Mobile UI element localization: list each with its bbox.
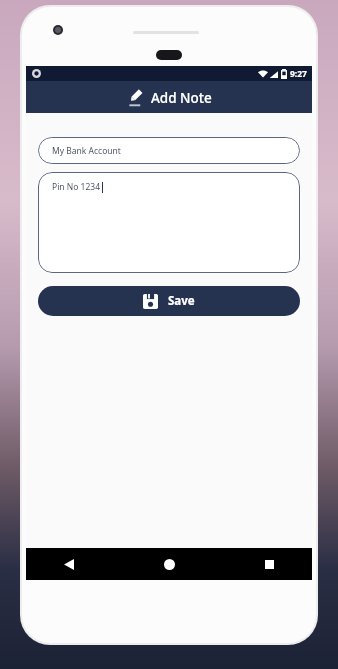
button[interactable]: My Bank Account — [38, 137, 300, 164]
staticText: My Bank Account — [52, 145, 121, 157]
button[interactable]: Recent apps — [254, 549, 284, 579]
button[interactable]: Home — [154, 549, 184, 579]
staticText: Add Note — [151, 89, 212, 107]
staticText: 9:27 — [290, 68, 307, 80]
button[interactable]: Save — [38, 286, 300, 316]
button[interactable]: Edit note — [26, 81, 312, 113]
button[interactable]: Pin No 1234 — [38, 172, 300, 273]
other: Edit note — [127, 88, 144, 107]
staticText: Save — [168, 293, 195, 309]
staticText: Pin No 1234 — [52, 181, 101, 193]
button[interactable]: Back — [54, 549, 84, 579]
